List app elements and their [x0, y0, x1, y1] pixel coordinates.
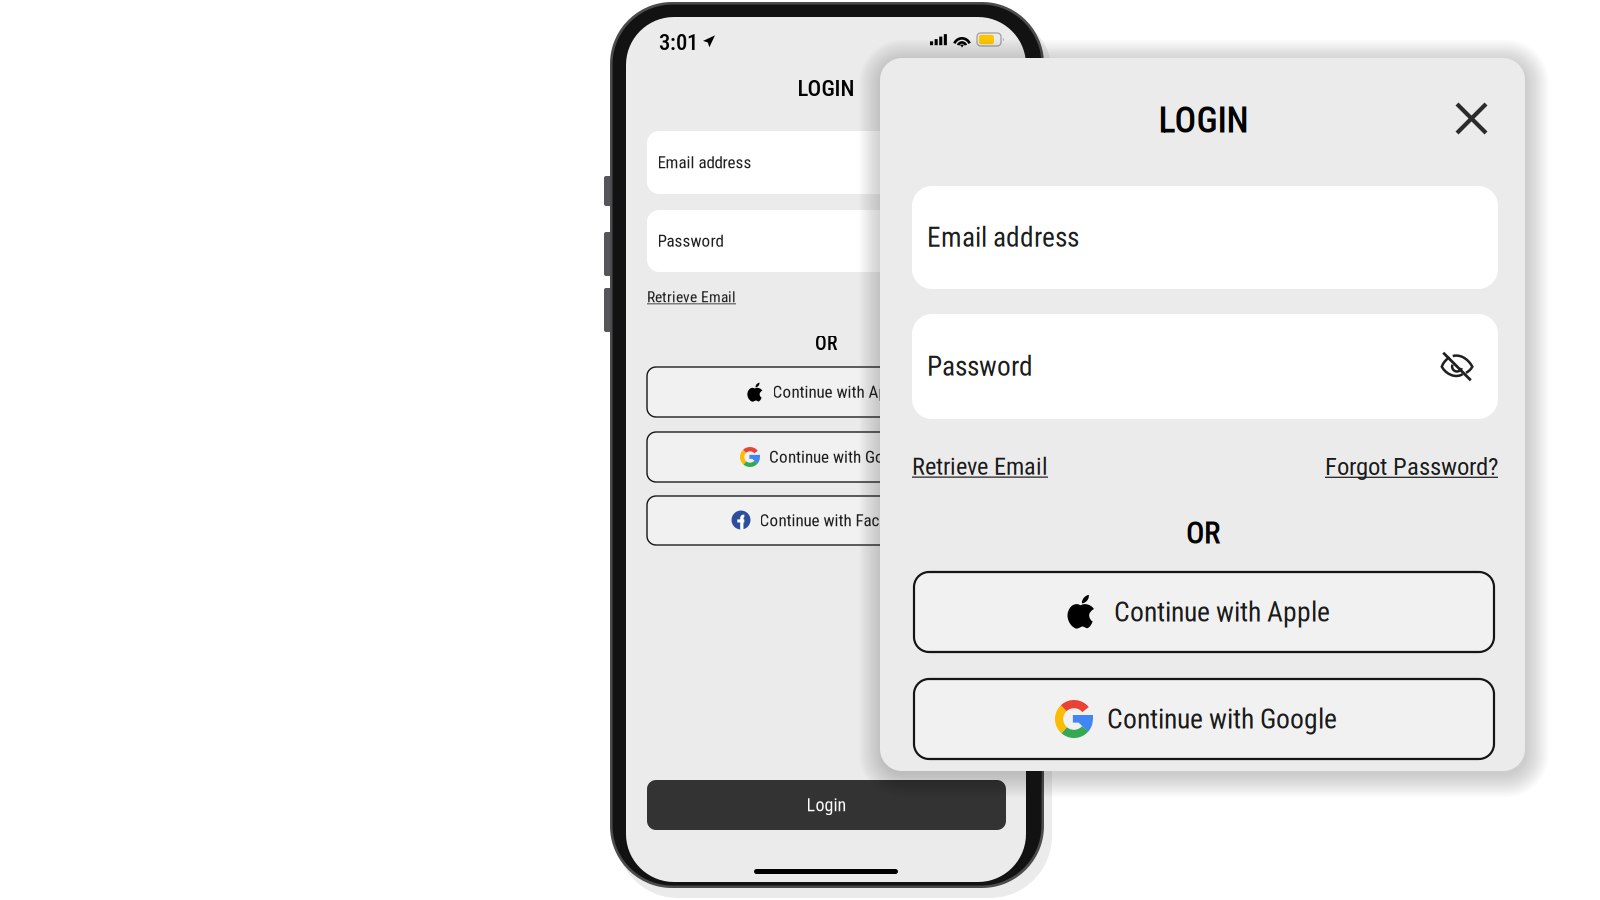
staticText: Email address — [657, 152, 751, 172]
button[interactable]: Retrieve Email — [647, 288, 736, 306]
staticText: OR — [1186, 515, 1221, 551]
staticText: Retrieve Email — [912, 452, 1048, 481]
button[interactable]: Continue with Google — [914, 679, 1494, 759]
button[interactable]: Close — [1457, 104, 1486, 133]
button[interactable]: Show password — [1439, 348, 1475, 384]
staticText: Continue with Apple — [772, 382, 906, 402]
staticText: 3:01 — [659, 29, 698, 56]
staticText: LOGIN — [1158, 99, 1248, 141]
button[interactable]: Forgot Password? — [894, 288, 1006, 306]
button[interactable]: Login — [647, 780, 1006, 830]
button[interactable]: Continue with Apple — [647, 367, 1006, 417]
staticText: Password — [927, 350, 1033, 382]
staticText: Continue with Apple — [1114, 596, 1330, 628]
staticText: Continue with Google — [1107, 703, 1337, 735]
button[interactable]: Show password — [975, 230, 996, 251]
staticText: Email address — [927, 221, 1079, 253]
staticText: Retrieve Email — [647, 288, 736, 306]
staticText: Continue with Google — [769, 447, 913, 467]
button[interactable]: Continue with Facebook — [647, 496, 1006, 545]
button[interactable]: Retrieve Email — [912, 452, 1048, 481]
button[interactable]: Continue with Google — [647, 432, 1006, 482]
staticText: LOGIN — [797, 75, 854, 102]
button[interactable]: Forgot Password? — [1325, 452, 1498, 481]
button[interactable]: Continue with Apple — [914, 572, 1494, 652]
staticText: Login — [806, 794, 846, 816]
staticText: Forgot Password? — [1325, 452, 1498, 481]
staticText: Password — [657, 231, 723, 251]
staticText: Forgot Password? — [894, 288, 1006, 306]
staticText: OR — [815, 332, 837, 355]
staticText: Continue with Facebook — [759, 510, 921, 530]
